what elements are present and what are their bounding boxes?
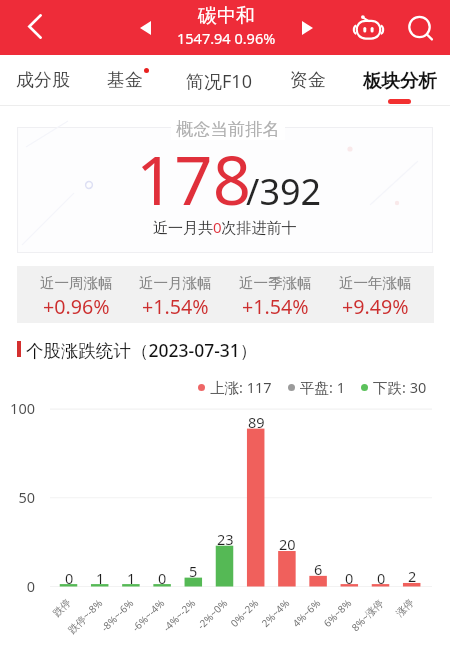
staticText: 涨停 (393, 596, 416, 619)
staticText: 板块分析 (363, 69, 437, 92)
staticText: 平盘: 1 (300, 377, 345, 397)
staticText: 近一月共0次排进前十 (153, 217, 297, 237)
staticText: 近一季涨幅 (239, 274, 312, 292)
button[interactable]: Search (398, 6, 441, 49)
staticText: +9.49% (342, 293, 409, 320)
button[interactable] (0, 127, 450, 253)
button[interactable]: 资金 (258, 55, 358, 105)
button[interactable]: 近一年涨幅 (325, 266, 425, 323)
staticText: 跌停~-8% (65, 596, 105, 636)
staticText: 0 (26, 576, 35, 596)
staticText: 0%~2% (227, 596, 261, 630)
staticText: +1.54% (142, 293, 209, 320)
staticText: 个股涨跌统计（2023-07-31） (26, 338, 258, 362)
button[interactable]: 近一月涨幅 (126, 266, 225, 323)
staticText: 6%~8% (320, 596, 354, 630)
staticText: +0.96% (43, 293, 110, 320)
button[interactable]: 板块分析 (350, 55, 450, 105)
staticText: 178 (136, 133, 251, 224)
staticText: 0 (158, 568, 167, 588)
staticText: 1 (127, 568, 136, 588)
staticText: 100 (10, 398, 35, 418)
staticText: 1547.94 0.96% (177, 28, 276, 48)
staticText: 50 (18, 487, 35, 507)
staticText: -2%~0% (194, 596, 230, 632)
staticText: 6 (314, 559, 323, 579)
button[interactable]: 近一周涨幅 (27, 266, 126, 323)
staticText: -6%~-4% (128, 596, 167, 635)
staticText: 0 (345, 568, 354, 588)
staticText: 资金 (290, 69, 326, 92)
button[interactable]: 简况F10 (169, 55, 269, 105)
staticText: /392 (246, 167, 322, 216)
staticText: 上涨: 117 (210, 377, 272, 397)
staticText: 8%~涨停 (348, 596, 386, 634)
staticText: 概念当前排名 (176, 118, 280, 140)
staticText: 5 (189, 561, 198, 581)
staticText: 0 (65, 568, 74, 588)
staticText: 近一周涨幅 (40, 274, 113, 292)
button[interactable]: Back (12, 4, 57, 49)
button[interactable]: 基金 (75, 55, 175, 105)
staticText: 基金 (107, 69, 143, 92)
staticText: 近一月涨幅 (139, 274, 212, 292)
staticText: 简况F10 (186, 69, 252, 94)
staticText: -4%~-2% (159, 596, 198, 635)
staticText: 0 (377, 568, 386, 588)
staticText: +1.54% (242, 293, 309, 320)
button[interactable]: 成分股 (0, 55, 93, 105)
staticText: 碳中和 (198, 4, 255, 28)
staticText: 23 (217, 529, 234, 549)
staticText: -8%~-6% (97, 596, 136, 635)
staticText: 成分股 (16, 69, 70, 92)
button[interactable]: Previous sector (127, 10, 163, 46)
staticText: 下跌: 30 (373, 377, 427, 397)
button[interactable]: AI assistant (346, 6, 390, 50)
staticText: 2 (408, 566, 417, 586)
staticText: 1 (96, 568, 105, 588)
staticText: 89 (248, 412, 265, 432)
staticText: 跌停 (50, 596, 73, 619)
button[interactable]: 近一季涨幅 (225, 266, 325, 323)
button[interactable]: Next sector (289, 10, 325, 46)
staticText: 4%~6% (289, 596, 323, 630)
staticText: 近一年涨幅 (339, 274, 412, 292)
staticText: 2%~4% (258, 596, 292, 630)
staticText: 20 (279, 534, 296, 554)
